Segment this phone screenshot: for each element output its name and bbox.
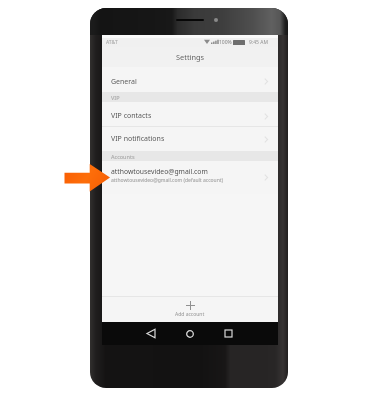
staticText: atthowtousevideo@gmail.com (111, 167, 208, 176)
staticText: atthowtousevideo@gmail.com (default acco… (111, 177, 224, 184)
button[interactable]: VIP notifications (102, 127, 278, 151)
button[interactable]: atthowtousevideo@gmail.com (102, 161, 278, 194)
staticText: VIP contacts (111, 111, 152, 121)
staticText: Accounts (111, 153, 135, 160)
staticText: 9:45 AM (249, 39, 268, 46)
button[interactable]: Add account (102, 297, 278, 322)
staticText: Settings (176, 52, 205, 62)
staticText: AT&T (106, 39, 118, 46)
button[interactable]: Home (180, 324, 199, 343)
staticText: VIP (111, 94, 120, 101)
staticText: 100% (219, 39, 232, 46)
button[interactable]: General (102, 67, 278, 92)
button[interactable]: VIP contacts (102, 102, 278, 126)
staticText: VIP notifications (111, 134, 165, 144)
staticText: General (111, 77, 137, 87)
button[interactable]: Back (141, 324, 160, 343)
staticText: Add account (175, 311, 205, 318)
button[interactable]: Recent apps (219, 324, 238, 343)
